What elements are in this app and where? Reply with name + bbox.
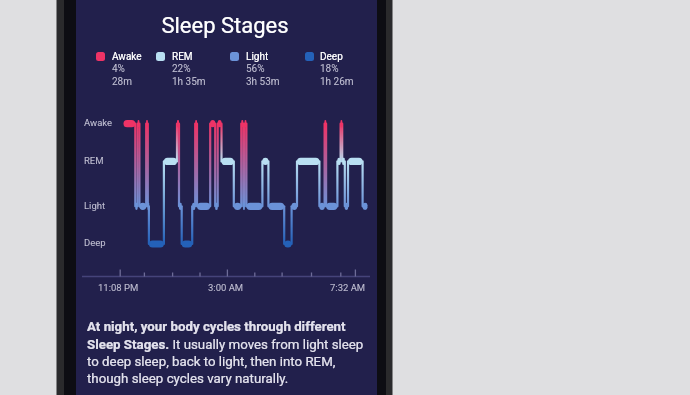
staticText: Awake — [112, 51, 142, 63]
staticText: REM — [172, 51, 193, 63]
staticText: 11:08 PM — [98, 282, 139, 293]
staticText: 18% — [320, 63, 339, 75]
staticText: 3h 53m — [246, 76, 280, 88]
staticText: At night, your body cycles through diffe… — [87, 319, 367, 386]
staticText: 56% — [246, 63, 265, 75]
staticText: Light — [246, 51, 269, 63]
staticText: Sleep Stages — [72, 13, 378, 39]
staticText: 1h 26m — [320, 76, 354, 88]
staticText: Deep — [320, 51, 343, 63]
staticText: Awake — [84, 117, 113, 128]
staticText: 7:32 AM — [330, 282, 366, 293]
staticText: 28m — [112, 76, 133, 88]
staticText: 1h 35m — [172, 76, 206, 88]
staticText: Deep — [84, 237, 106, 248]
staticText: 22% — [172, 63, 191, 75]
staticText: 3:00 AM — [208, 282, 244, 293]
staticText: REM — [84, 155, 104, 166]
staticText: Light — [84, 200, 106, 211]
staticText: 4% — [112, 63, 125, 75]
